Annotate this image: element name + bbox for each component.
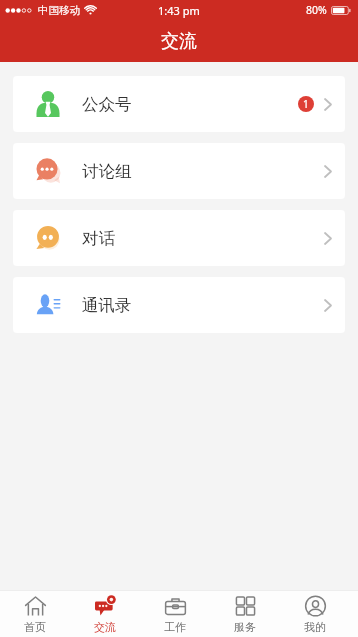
staticText: 通讯录 xyxy=(82,295,132,316)
button[interactable]: 首页 xyxy=(0,594,70,634)
button[interactable]: 服务 xyxy=(210,594,280,634)
staticText: 讨论组 xyxy=(82,161,132,182)
staticText: 80% xyxy=(306,3,327,17)
button[interactable]: 通讯录 xyxy=(13,277,345,333)
staticText: 首页 xyxy=(24,620,46,634)
staticText: 交流 xyxy=(161,30,197,53)
button[interactable]: 讨论组 xyxy=(13,143,345,199)
staticText: 中国移动 xyxy=(38,4,80,17)
button[interactable]: 交流 xyxy=(70,594,140,634)
staticText: 我的 xyxy=(304,620,326,634)
staticText: 服务 xyxy=(234,620,256,634)
button[interactable]: 工作 xyxy=(140,594,210,634)
button[interactable]: 我的 xyxy=(280,594,350,634)
staticText: 1:43 pm xyxy=(158,3,200,18)
staticText: 工作 xyxy=(164,620,186,634)
staticText: 公众号 xyxy=(82,94,132,115)
staticText: 1 xyxy=(303,97,309,111)
staticText: 交流 xyxy=(94,620,116,634)
staticText: 对话 xyxy=(82,228,115,249)
button[interactable]: 对话 xyxy=(13,210,345,266)
button[interactable]: 公众号 xyxy=(13,76,345,132)
